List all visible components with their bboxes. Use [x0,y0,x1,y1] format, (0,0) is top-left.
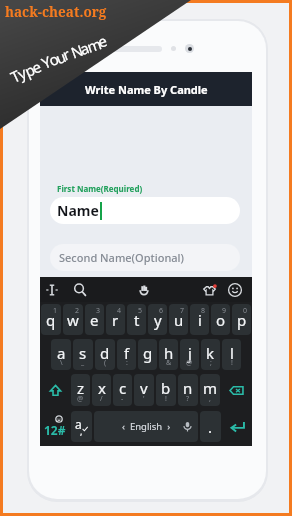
staticText: @ [77,394,84,404]
button[interactable]: Handwriting [133,279,155,301]
staticText: : [126,358,128,368]
staticText: v [140,378,148,398]
staticText: _ [81,358,85,368]
button[interactable]: b [156,374,176,406]
button[interactable]: Emoji [224,279,246,301]
button[interactable]: r [106,304,125,335]
button[interactable]: Enter [223,411,251,442]
button[interactable]: w [63,304,83,335]
staticText: k [206,343,215,363]
button[interactable]: n [178,374,198,406]
button[interactable]: y [148,304,167,335]
button[interactable]: Backspace [222,374,251,406]
button[interactable]: . [200,411,221,442]
button[interactable]: Search [69,279,91,301]
button[interactable]: l [222,339,241,370]
button[interactable]: o [211,304,230,335]
staticText: 9 [222,306,227,316]
button[interactable]: x [92,374,111,406]
staticText: ! [231,358,233,368]
staticText: , [80,425,83,437]
staticText: e [28,56,45,78]
button[interactable]: Second Name(Optional) [50,244,240,271]
staticText: p [237,310,247,330]
staticText: N [68,40,86,62]
button[interactable]: d [95,339,115,370]
button[interactable]: q [41,304,61,335]
staticText: x [98,378,106,398]
staticText: 3 [96,306,101,316]
staticText: 12# [44,422,66,438]
staticText: ; [210,358,212,368]
staticText: w [67,310,79,330]
button[interactable]: z [71,374,90,406]
staticText: 1 [53,306,58,316]
button[interactable]: a [71,411,92,442]
staticText: l [230,343,234,363]
staticText: i [198,310,202,330]
staticText: r [112,310,119,330]
staticText: a [57,343,66,363]
button[interactable]: Name [50,197,240,224]
button[interactable]: f [117,339,136,370]
button[interactable]: Text editing [41,279,63,301]
button[interactable]: t [127,304,146,335]
button[interactable]: j [180,339,199,370]
button[interactable]: Write Name By Candle [40,72,252,106]
staticText: o [216,310,226,330]
button[interactable]: p [232,304,251,335]
staticText: o [46,48,62,70]
button[interactable]: v [134,374,154,406]
staticText: y [154,310,162,330]
staticText: p [21,59,39,81]
staticText: 8 [201,306,206,316]
staticText: z [77,378,85,398]
staticText: Write Name By Candle [85,82,208,97]
staticText: f [124,343,130,363]
button[interactable]: k [201,339,220,370]
button[interactable]: c [113,374,132,406]
staticText: a [75,416,82,432]
staticText: Name [57,201,99,220]
staticText: q [46,310,56,330]
staticText: ' [143,394,145,404]
staticText: 7 [180,306,185,316]
button[interactable]: a [51,339,71,370]
staticText: g [143,343,153,363]
button[interactable]: 12# [41,411,69,442]
staticText: b [161,378,171,398]
staticText: \ [60,358,63,368]
staticText: 0 [243,306,248,316]
staticText: u [174,310,184,330]
staticText: h [164,343,174,363]
button[interactable]: u [169,304,188,335]
staticText: ‹ English › [122,420,171,433]
button[interactable]: s [73,339,93,370]
staticText: 6 [159,306,164,316]
button[interactable]: h [159,339,178,370]
staticText: " [146,358,149,368]
button[interactable]: Shift [41,374,69,406]
staticText: t [134,310,140,330]
staticText: m [84,33,105,57]
staticText: e [90,310,99,330]
button[interactable]: e [85,304,104,335]
staticText: a [77,37,92,59]
staticText: hack-cheat.org [5,3,107,21]
button[interactable]: m [200,374,220,406]
staticText: r [60,43,73,65]
staticText: , [209,394,211,404]
staticText: u [53,46,69,68]
staticText: ! [165,394,167,404]
staticText: & [166,358,172,368]
button[interactable]: ‹ English › [94,411,198,442]
staticText: First Name(Required) [57,183,143,194]
staticText: y [14,62,30,84]
button[interactable]: i [190,304,209,335]
button[interactable]: Themes [198,279,220,301]
staticText: / [100,394,103,404]
staticText: Y [38,51,54,73]
staticText: c [119,378,127,398]
staticText: m [203,378,218,398]
button[interactable]: g [138,339,157,370]
